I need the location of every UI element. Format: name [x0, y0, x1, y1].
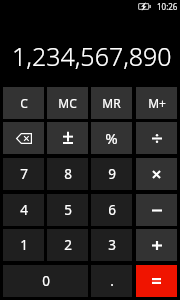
- button[interactable]: 0: [3, 265, 88, 297]
- button[interactable]: 1: [3, 229, 44, 261]
- button[interactable]: 9: [91, 158, 132, 190]
- staticText: 6: [108, 201, 116, 219]
- staticText: 5: [64, 201, 72, 219]
- staticText: MR: [102, 95, 121, 111]
- button[interactable]: Plus: [136, 229, 177, 261]
- button[interactable]: Minus: [136, 194, 177, 226]
- button[interactable]: 5: [47, 194, 88, 226]
- button[interactable]: 3: [91, 229, 132, 261]
- button[interactable]: Backspace: [3, 122, 44, 154]
- staticText: 1,234,567,890: [12, 39, 172, 69]
- staticText: 2: [64, 236, 72, 254]
- staticText: .: [110, 272, 114, 290]
- button[interactable]: MC: [47, 87, 88, 119]
- button[interactable]: 4: [3, 194, 44, 226]
- button[interactable]: 2: [47, 229, 88, 261]
- button[interactable]: Equals: [136, 265, 177, 297]
- staticText: 3: [108, 236, 116, 254]
- button[interactable]: M+: [136, 87, 177, 119]
- button[interactable]: Divide: [136, 122, 177, 154]
- button[interactable]: MR: [91, 87, 132, 119]
- button[interactable]: 8: [47, 158, 88, 190]
- staticText: 8: [64, 165, 72, 183]
- staticText: 1: [20, 236, 28, 254]
- staticText: M+: [148, 95, 166, 111]
- staticText: C: [20, 95, 28, 111]
- staticText: 10:26: [157, 1, 178, 11]
- staticText: 7: [20, 165, 28, 183]
- button[interactable]: Plus minus: [47, 122, 88, 154]
- button[interactable]: 6: [91, 194, 132, 226]
- staticText: 0: [42, 272, 50, 290]
- staticText: MC: [58, 95, 77, 111]
- button[interactable]: .: [91, 265, 132, 297]
- button[interactable]: Multiply: [136, 158, 177, 190]
- staticText: 9: [108, 165, 116, 183]
- staticText: %: [105, 128, 118, 148]
- staticText: 4: [20, 201, 28, 219]
- button[interactable]: C: [3, 87, 44, 119]
- button[interactable]: %: [91, 122, 132, 154]
- button[interactable]: 7: [3, 158, 44, 190]
